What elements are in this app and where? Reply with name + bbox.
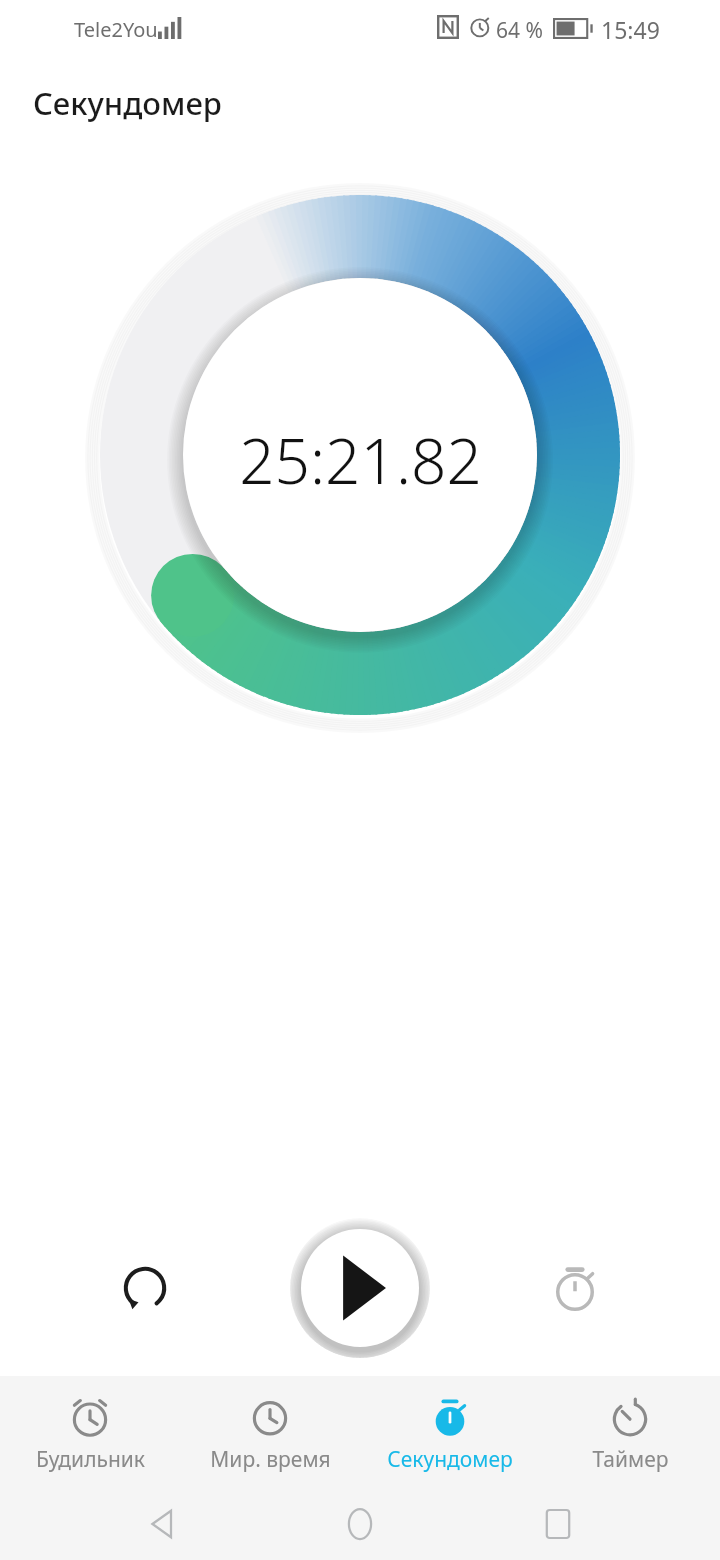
staticText: 25:21.82 bbox=[239, 418, 482, 502]
button[interactable]: Запустить bbox=[290, 1218, 430, 1358]
button[interactable]: Круг bbox=[535, 1248, 615, 1328]
button[interactable]: Сбросить bbox=[105, 1248, 185, 1328]
staticText: 15:49 bbox=[601, 14, 660, 45]
staticText: Секундомер bbox=[33, 82, 222, 124]
button[interactable]: Назад bbox=[126, 1488, 198, 1560]
staticText: Таймер bbox=[592, 1445, 669, 1474]
button[interactable]: Секундомер bbox=[360, 1391, 540, 1474]
staticText: Будильник bbox=[36, 1445, 145, 1474]
staticText: 64 % bbox=[496, 16, 543, 45]
button[interactable]: Обзор bbox=[522, 1488, 594, 1560]
staticText: Tele2You bbox=[74, 16, 158, 43]
button[interactable]: Будильник bbox=[0, 1391, 180, 1474]
button[interactable]: Мир. время bbox=[180, 1391, 360, 1474]
button[interactable]: Таймер bbox=[540, 1391, 720, 1474]
staticText: Мир. время bbox=[210, 1445, 331, 1474]
button[interactable]: Главный экран bbox=[324, 1488, 396, 1560]
staticText: Секундомер bbox=[387, 1445, 513, 1474]
